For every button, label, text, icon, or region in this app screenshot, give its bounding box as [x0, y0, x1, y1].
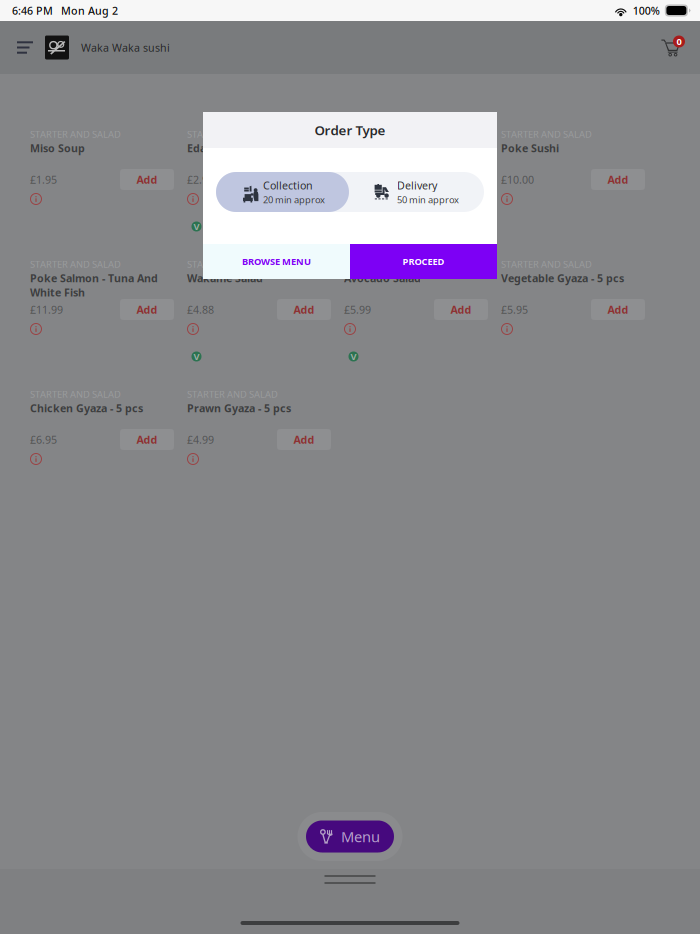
staticText: Add — [450, 302, 471, 317]
staticText: Add — [136, 432, 157, 447]
staticText: 6:46 PM — [12, 3, 53, 18]
staticText: Seaweed Salad — [344, 141, 421, 155]
button[interactable]: Add — [277, 429, 331, 450]
staticText: £5.50 — [344, 172, 371, 187]
button[interactable]: Menu — [10, 30, 40, 64]
staticText: BROWSE MENU — [242, 255, 311, 268]
staticText: STARTER AND SALAD — [30, 258, 121, 270]
staticText: 20 min approx — [263, 193, 325, 206]
staticText: Poke Sushi — [501, 141, 559, 155]
staticText: Add — [607, 172, 628, 187]
button[interactable]: Add — [591, 299, 645, 320]
button[interactable]: Add — [277, 169, 331, 190]
staticText: Wakame Salad — [187, 271, 263, 285]
staticText: STARTER AND SALAD — [187, 128, 278, 140]
staticText: V — [350, 350, 356, 363]
staticText: Add — [293, 302, 314, 317]
staticText: Poke Salmon - Tuna And White Fish — [30, 271, 158, 299]
staticText: STARTER AND SALAD — [501, 128, 592, 140]
staticText: PROCEED — [402, 255, 444, 268]
staticText: £2.95 — [187, 172, 214, 187]
staticText: Delivery — [397, 178, 437, 192]
staticText: STARTER AND SALAD — [30, 388, 121, 400]
staticText: Edamame — [187, 141, 238, 155]
staticText: £6.95 — [30, 432, 57, 447]
staticText: £4.99 — [187, 432, 214, 447]
staticText: STARTER AND SALAD — [344, 258, 435, 270]
staticText: Mon Aug 2 — [61, 3, 118, 18]
staticText: STARTER AND SALAD — [187, 388, 278, 400]
button[interactable]: PROCEED — [350, 244, 497, 279]
button[interactable]: Add — [120, 429, 174, 450]
staticText: Order Type — [314, 121, 385, 139]
staticText: Waka Waka sushi — [81, 40, 170, 55]
button[interactable]: Add — [277, 299, 331, 320]
button[interactable]: Delivery — [349, 172, 484, 212]
button[interactable]: Add — [434, 169, 488, 190]
staticText: Add — [607, 302, 628, 317]
staticText: Add — [293, 172, 314, 187]
staticText: V — [193, 350, 199, 363]
staticText: £5.99 — [344, 302, 371, 317]
button[interactable]: Menu — [297, 812, 402, 861]
staticText: Prawn Gyaza - 5 pcs — [187, 401, 291, 415]
staticText: £5.95 — [501, 302, 528, 317]
staticText: STARTER AND SALAD — [30, 128, 121, 140]
staticText: 100% — [633, 3, 660, 18]
staticText: Add — [136, 302, 157, 317]
button[interactable]: Add — [120, 169, 174, 190]
button[interactable]: Add — [591, 169, 645, 190]
button[interactable]: Add — [434, 299, 488, 320]
staticText: Menu — [341, 827, 380, 846]
staticText: STARTER AND SALAD — [344, 128, 435, 140]
button[interactable]: Collection — [216, 172, 349, 212]
staticText: £10.00 — [501, 172, 534, 187]
button[interactable]: Cart — [654, 30, 688, 64]
staticText: Miso Soup — [30, 141, 85, 155]
staticText: V — [193, 220, 199, 233]
staticText: STARTER AND SALAD — [187, 258, 278, 270]
button[interactable]: Add — [120, 299, 174, 320]
staticText: Add — [136, 172, 157, 187]
staticText: 0 — [676, 35, 681, 48]
staticText: Chicken Gyaza - 5 pcs — [30, 401, 143, 415]
staticText: STARTER AND SALAD — [501, 258, 592, 270]
staticText: Vegetable Gyaza - 5 pcs — [501, 271, 624, 285]
staticText: Collection — [263, 178, 313, 192]
staticText: Avocado Salad — [344, 271, 421, 285]
staticText: £1.95 — [30, 172, 57, 187]
staticText: £4.88 — [187, 302, 214, 317]
button[interactable]: BROWSE MENU — [203, 244, 350, 279]
staticText: Add — [293, 432, 314, 447]
staticText: 50 min approx — [397, 193, 459, 206]
staticText: £11.99 — [30, 302, 63, 317]
